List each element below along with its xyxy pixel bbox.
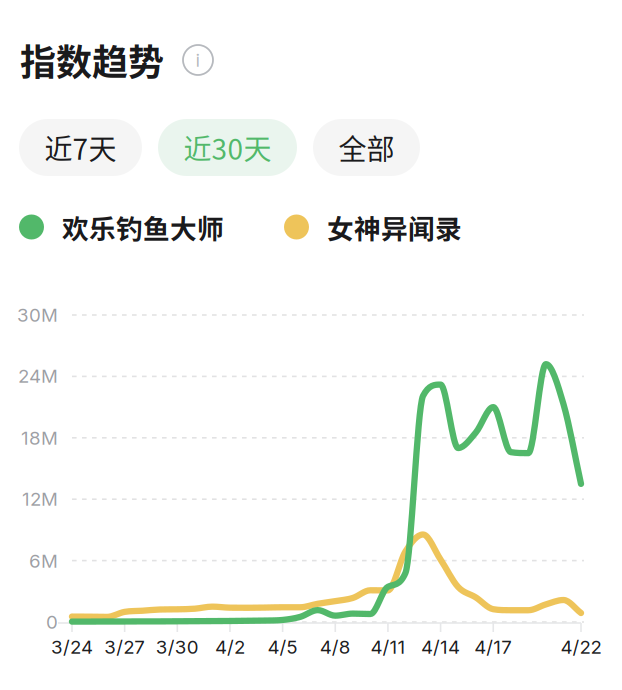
staticText: 3/24 (51, 636, 93, 658)
staticText: 全部 (338, 127, 394, 168)
staticText: 3/30 (156, 636, 199, 658)
staticText: 24M (18, 365, 58, 387)
staticText: 4/22 (560, 636, 601, 658)
staticText: 欢乐钓鱼大师 (62, 208, 224, 246)
button[interactable]: 关于指数趋势 (183, 45, 213, 75)
button[interactable]: 全部 (313, 119, 420, 176)
staticText: 近7天 (44, 127, 116, 168)
staticText: 4/2 (215, 636, 245, 658)
staticText: 4/8 (320, 636, 351, 658)
staticText: 30M (17, 304, 58, 326)
staticText: 4/17 (474, 636, 512, 658)
staticText: 女神异闻录 (327, 208, 462, 246)
staticText: 4/5 (268, 636, 298, 658)
staticText: 指数趋势 (20, 34, 164, 86)
staticText: 0 (46, 611, 58, 633)
staticText: 近30天 (183, 127, 271, 168)
staticText: i (195, 49, 200, 71)
staticText: 3/27 (104, 636, 145, 658)
button[interactable]: 近30天 (158, 119, 297, 176)
staticText: 18M (21, 427, 58, 449)
staticText: 4/11 (370, 636, 405, 658)
button[interactable]: 近7天 (19, 119, 142, 176)
staticText: 6M (29, 550, 58, 572)
staticText: 4/14 (421, 636, 460, 658)
staticText: 12M (22, 488, 58, 510)
